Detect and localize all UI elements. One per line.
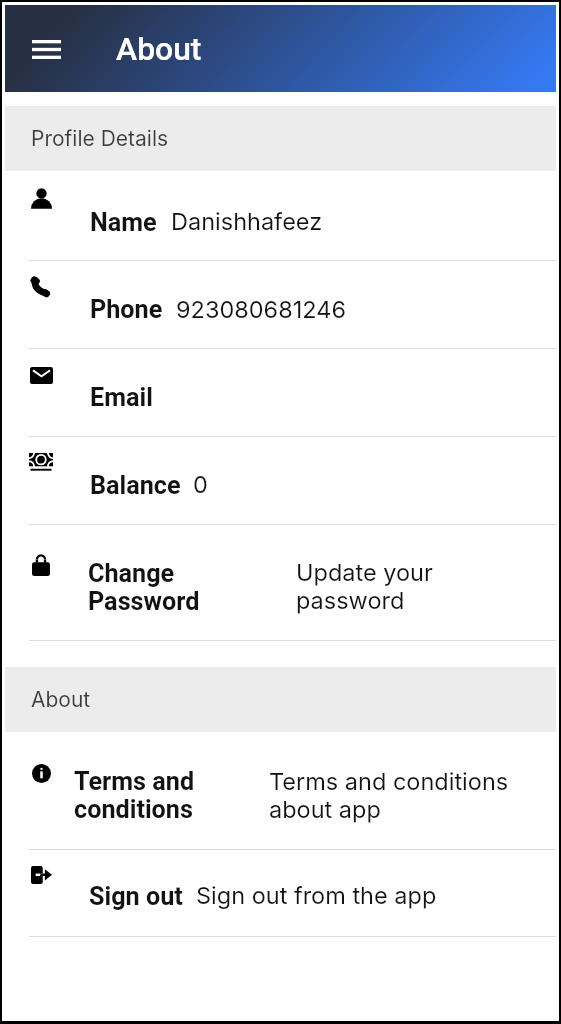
staticText: 0 bbox=[193, 470, 208, 498]
button[interactable]: Open navigation menu bbox=[23, 26, 69, 72]
staticText: Change Password bbox=[88, 559, 216, 616]
staticText: Phone bbox=[90, 295, 163, 325]
button[interactable]: Phone bbox=[5, 261, 556, 349]
staticText: Sign out bbox=[89, 882, 183, 912]
staticText: Sign out from the app bbox=[196, 881, 437, 909]
staticText: Update your password bbox=[296, 558, 501, 614]
button[interactable]: Email bbox=[5, 349, 556, 437]
staticText: Email bbox=[90, 383, 153, 413]
staticText: Terms and conditions about app bbox=[269, 767, 519, 823]
staticText: 923080681246 bbox=[176, 295, 346, 323]
button[interactable]: Balance bbox=[5, 437, 556, 525]
staticText: About bbox=[116, 30, 202, 67]
button[interactable]: Sign out bbox=[5, 850, 556, 937]
staticText: Name bbox=[90, 208, 157, 238]
staticText: Profile Details bbox=[31, 126, 169, 151]
button[interactable]: Terms and conditions bbox=[5, 732, 556, 850]
staticText: Danishhafeez bbox=[171, 207, 323, 235]
staticText: Terms and conditions bbox=[74, 767, 202, 824]
button[interactable]: Change Password bbox=[5, 525, 556, 667]
button[interactable]: Name bbox=[5, 171, 556, 261]
staticText: Balance bbox=[90, 471, 181, 501]
staticText: About bbox=[31, 687, 91, 712]
